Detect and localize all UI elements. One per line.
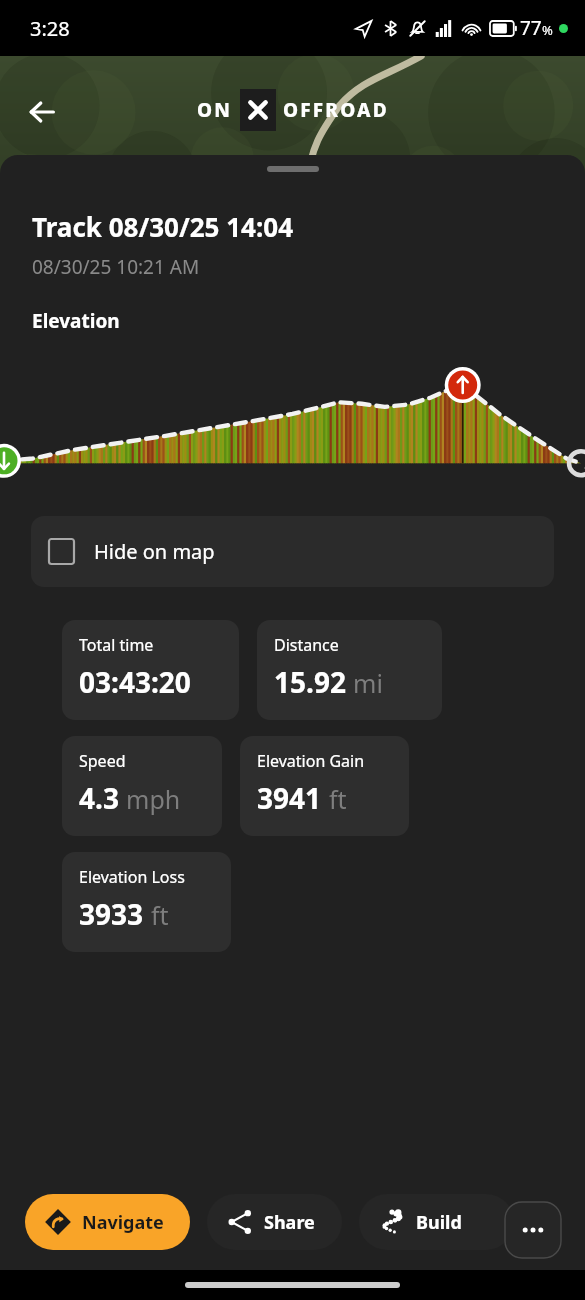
staticText: Elevation xyxy=(32,308,120,334)
staticText: 77 xyxy=(520,15,542,41)
staticText: Share xyxy=(264,1210,315,1235)
staticText: mph xyxy=(126,782,181,816)
staticText: Elevation Loss xyxy=(79,866,185,888)
button[interactable]: Build Route xyxy=(359,1194,514,1250)
button[interactable]: Total time xyxy=(62,620,239,720)
staticText: 3:28 xyxy=(30,15,70,42)
button[interactable]: Elevation Loss xyxy=(62,852,231,952)
button[interactable]: Speed xyxy=(62,736,222,836)
staticText: Distance xyxy=(274,634,339,656)
staticText: 15.92 xyxy=(274,663,346,701)
button[interactable]: Hide on map xyxy=(31,516,554,587)
staticText: Total time xyxy=(79,634,154,656)
staticText: 3933 xyxy=(79,895,144,933)
staticText: ft xyxy=(329,782,347,816)
button[interactable]: Distance xyxy=(257,620,442,720)
button[interactable]: Elevation Gain xyxy=(240,736,409,836)
button[interactable]: More options xyxy=(505,1202,561,1258)
button[interactable]: Share xyxy=(207,1194,342,1250)
button[interactable]: Navigate xyxy=(25,1194,190,1250)
button[interactable]: Back xyxy=(14,84,70,140)
staticText: 03:43:20 xyxy=(79,663,191,701)
staticText: Track 08/30/25 14:04 xyxy=(32,209,294,244)
staticText: 3941 xyxy=(257,779,322,817)
staticText: 4.3 xyxy=(79,779,119,817)
staticText: 08/30/25 10:21 AM xyxy=(32,254,200,280)
staticText: ON xyxy=(197,97,233,123)
staticText: Build Route xyxy=(416,1210,514,1235)
staticText: mi xyxy=(353,666,383,700)
staticText: Elevation Gain xyxy=(257,750,365,772)
staticText: % xyxy=(542,21,553,39)
staticText: OFFROAD xyxy=(283,97,389,123)
staticText: Navigate xyxy=(82,1210,164,1235)
staticText: Hide on map xyxy=(94,538,215,565)
staticText: Speed xyxy=(79,750,126,772)
staticText: ft xyxy=(151,898,169,932)
